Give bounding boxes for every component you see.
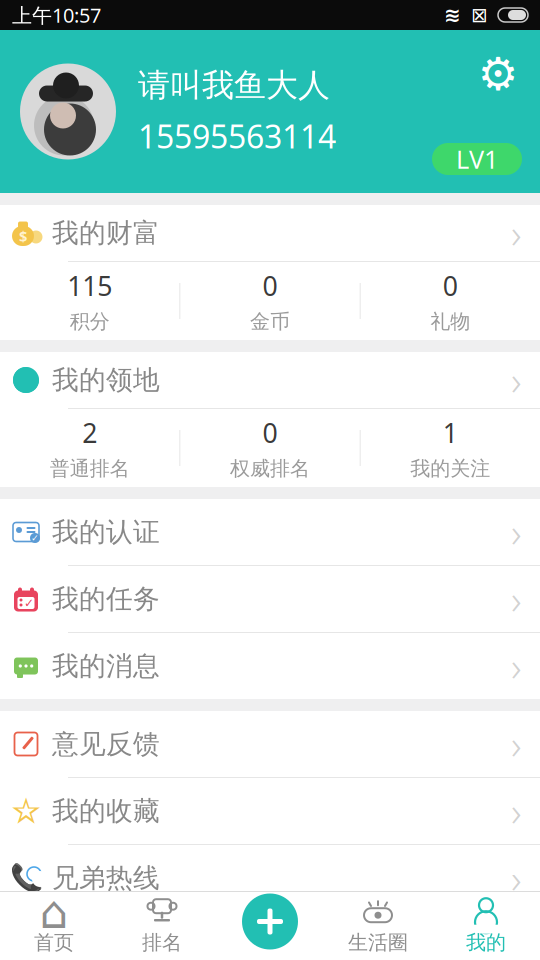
- button[interactable]: 排名: [108, 892, 216, 960]
- staticText: ⌂: [39, 886, 68, 938]
- staticText: ✓: [31, 533, 39, 543]
- button[interactable]: ✓: [0, 566, 540, 632]
- staticText: 我的认证: [52, 516, 160, 548]
- staticText: ›: [511, 505, 522, 558]
- staticText: 请叫我鱼大人: [138, 66, 330, 105]
- staticText: 排名: [142, 930, 182, 955]
- staticText: 上午10:57: [12, 2, 101, 28]
- staticText: 首页: [34, 930, 74, 955]
- staticText: 📞: [9, 863, 42, 893]
- staticText: LV1: [456, 142, 498, 176]
- button[interactable]: $: [0, 205, 540, 261]
- button[interactable]: ★: [0, 912, 540, 960]
- button[interactable]: 设置: [472, 48, 524, 100]
- staticText: 我的关注: [410, 456, 490, 481]
- staticText: 金币: [250, 309, 290, 334]
- staticText: 0: [262, 268, 277, 303]
- staticText: 我的财富: [52, 217, 160, 249]
- staticText: ⚙: [477, 48, 518, 100]
- staticText: 普通排名: [50, 456, 130, 481]
- staticText: ⊠: [471, 4, 488, 26]
- button[interactable]: 我的: [432, 892, 540, 960]
- button[interactable]: 生活圈: [324, 892, 432, 960]
- staticText: ★: [10, 791, 42, 831]
- staticText: 我的: [466, 930, 506, 955]
- staticText: ★: [16, 932, 36, 958]
- staticText: 我的收藏: [52, 795, 160, 827]
- staticText: 积分: [70, 309, 110, 334]
- staticText: 我的领地: [52, 364, 160, 396]
- staticText: ★: [16, 798, 36, 824]
- staticText: 115: [67, 268, 112, 303]
- staticText: 0: [262, 415, 277, 450]
- staticText: ›: [511, 572, 522, 625]
- staticText: ›: [511, 717, 522, 770]
- staticText: ★: [10, 925, 42, 960]
- staticText: ›: [511, 784, 522, 837]
- staticText: $: [19, 226, 27, 246]
- button[interactable]: 意见反馈: [0, 711, 540, 777]
- button[interactable]: ★: [0, 778, 540, 844]
- staticText: 1: [443, 415, 458, 450]
- staticText: 权威排名: [230, 456, 310, 481]
- staticText: ›: [511, 639, 522, 692]
- button[interactable]: LV1: [432, 143, 522, 175]
- staticText: 生活圈: [348, 930, 408, 955]
- staticText: 15595563114: [138, 115, 336, 157]
- staticText: 0: [443, 268, 458, 303]
- button[interactable]: ⌂: [0, 892, 108, 960]
- staticText: 关于我们: [52, 929, 160, 960]
- staticText: 我的消息: [52, 650, 160, 682]
- button[interactable]: 发布: [242, 893, 298, 949]
- staticText: 2: [82, 415, 97, 450]
- button[interactable]: 📞: [0, 845, 540, 911]
- staticText: ›: [511, 353, 522, 406]
- button[interactable]: ✓: [0, 499, 540, 565]
- staticText: ›: [511, 851, 522, 904]
- staticText: 意见反馈: [52, 728, 160, 760]
- staticText: 我的任务: [52, 583, 160, 615]
- button[interactable]: 我的领地: [0, 352, 540, 408]
- staticText: ≋: [444, 4, 461, 26]
- staticText: ›: [511, 206, 522, 259]
- staticText: 礼物: [430, 309, 470, 334]
- button[interactable]: 我的消息: [0, 633, 540, 699]
- staticText: 兄弟热线: [52, 862, 160, 894]
- staticText: ✓: [24, 596, 34, 610]
